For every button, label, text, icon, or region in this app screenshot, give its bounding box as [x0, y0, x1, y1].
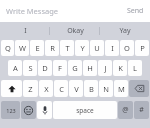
staticText: O: [124, 43, 130, 53]
button[interactable]: T: [60, 40, 74, 56]
staticText: A: [13, 63, 18, 73]
button[interactable]: S: [23, 60, 37, 76]
button[interactable]: U: [90, 40, 104, 56]
staticText: F: [58, 63, 62, 73]
staticText: M: [118, 84, 125, 94]
button[interactable]: M: [114, 80, 128, 97]
button[interactable]: 123: [1, 101, 20, 119]
staticText: W: [19, 43, 26, 53]
staticText: H: [87, 63, 93, 73]
staticText: Q: [5, 43, 11, 53]
staticText: R: [50, 43, 55, 53]
button[interactable]: #: [134, 101, 149, 119]
staticText: X: [44, 84, 49, 94]
button[interactable]: Backspace: [129, 80, 149, 97]
staticText: Y: [80, 43, 85, 53]
staticText: K: [118, 63, 123, 73]
button[interactable]: F: [53, 60, 67, 76]
button[interactable]: V: [69, 80, 83, 97]
staticText: G: [72, 63, 78, 73]
button[interactable]: Z: [23, 80, 38, 97]
button[interactable]: R: [45, 40, 59, 56]
staticText: I: [24, 26, 27, 36]
staticText: Write Message: [6, 6, 59, 16]
button[interactable]: H: [83, 60, 97, 76]
staticText: D: [42, 63, 48, 73]
button[interactable]: @: [118, 101, 133, 119]
button[interactable]: Emoji: [21, 101, 36, 119]
button[interactable]: K: [113, 60, 127, 76]
button[interactable]: C: [54, 80, 68, 97]
button[interactable]: D: [38, 60, 52, 76]
staticText: S: [28, 63, 33, 73]
staticText: Send: [127, 6, 144, 16]
staticText: N: [103, 84, 109, 94]
staticText: V: [74, 84, 79, 94]
button[interactable]: space: [53, 101, 117, 119]
button[interactable]: Yay: [100, 22, 150, 40]
staticText: J: [104, 63, 107, 73]
button[interactable]: I: [105, 40, 119, 56]
button[interactable]: Q: [1, 40, 14, 56]
staticText: Z: [28, 84, 33, 94]
staticText: T: [65, 43, 70, 53]
button[interactable]: J: [98, 60, 112, 76]
button[interactable]: O: [120, 40, 134, 56]
staticText: P: [140, 43, 145, 53]
button[interactable]: Shift: [1, 80, 22, 97]
button[interactable]: A: [8, 60, 22, 76]
staticText: L: [133, 63, 137, 73]
button[interactable]: N: [99, 80, 113, 97]
button[interactable]: Y: [75, 40, 89, 56]
button[interactable]: E: [30, 40, 44, 56]
button[interactable]: I: [0, 22, 50, 40]
staticText: Okay: [67, 26, 84, 36]
button[interactable]: Voice input: [37, 101, 52, 119]
staticText: I: [111, 43, 114, 53]
button[interactable]: B: [84, 80, 98, 97]
button[interactable]: Write Message: [6, 0, 123, 22]
staticText: B: [89, 84, 94, 94]
button[interactable]: X: [39, 80, 53, 97]
staticText: 123: [6, 107, 16, 114]
staticText: E: [35, 43, 40, 53]
staticText: Yay: [119, 26, 131, 36]
staticText: C: [59, 84, 64, 94]
button[interactable]: W: [15, 40, 29, 56]
button[interactable]: G: [68, 60, 82, 76]
staticText: #: [139, 105, 144, 115]
staticText: U: [94, 43, 100, 53]
button[interactable]: P: [135, 40, 149, 56]
staticText: @: [122, 105, 129, 115]
button[interactable]: Send: [127, 0, 144, 22]
button[interactable]: Okay: [50, 22, 100, 40]
button[interactable]: L: [128, 60, 142, 76]
staticText: space: [76, 106, 94, 115]
